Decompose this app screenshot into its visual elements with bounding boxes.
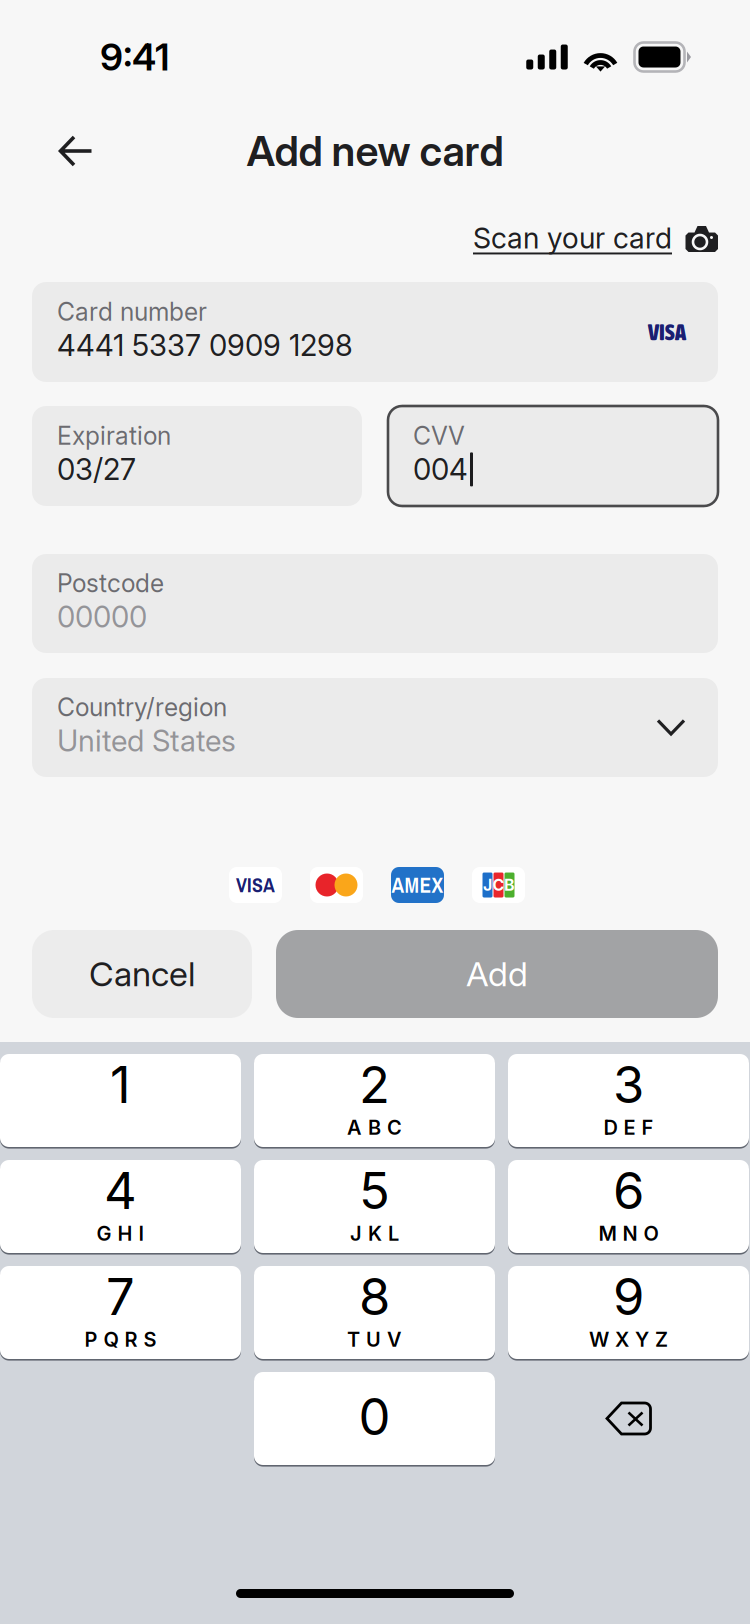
- staticText: VISA: [236, 871, 275, 898]
- staticText: A B C: [347, 1115, 402, 1140]
- staticText: C: [492, 875, 504, 895]
- staticText: 5: [359, 1160, 390, 1221]
- button[interactable]: Back: [41, 118, 111, 184]
- staticText: Add new card: [246, 126, 503, 176]
- staticText: VISA: [648, 319, 686, 345]
- staticText: W X Y Z: [589, 1327, 668, 1352]
- button[interactable]: Delete: [508, 1372, 749, 1465]
- button[interactable]: 2: [254, 1054, 495, 1147]
- staticText: G H I: [96, 1221, 144, 1246]
- staticText: Country/region: [57, 692, 227, 722]
- staticText: 6: [613, 1160, 644, 1221]
- staticText: Postcode: [57, 568, 164, 598]
- button[interactable]: 3: [508, 1054, 749, 1147]
- staticText: 1: [110, 1054, 131, 1115]
- staticText: 004: [413, 452, 468, 487]
- staticText: Card number: [57, 297, 207, 327]
- staticText: 4441 5337 0909 1298: [57, 328, 353, 363]
- staticText: Expiration: [57, 421, 171, 451]
- staticText: M N O: [598, 1221, 658, 1246]
- button[interactable]: 5: [254, 1160, 495, 1253]
- staticText: 03/27: [57, 452, 136, 487]
- staticText: United States: [57, 723, 236, 759]
- staticText: Scan your card: [473, 221, 672, 255]
- staticText: CVV: [413, 421, 465, 451]
- staticText: 00000: [57, 599, 147, 635]
- button[interactable]: 6: [508, 1160, 749, 1253]
- staticText: Cancel: [89, 953, 195, 994]
- button[interactable]: 1: [0, 1054, 241, 1147]
- staticText: Add: [466, 953, 528, 994]
- staticText: 3: [613, 1054, 644, 1115]
- staticText: 2: [359, 1054, 390, 1115]
- button[interactable]: 4: [0, 1160, 241, 1253]
- staticText: J: [483, 875, 492, 895]
- staticText: 9:41: [100, 34, 170, 80]
- button[interactable]: Add: [276, 930, 718, 1018]
- button[interactable]: 9: [508, 1266, 749, 1359]
- button[interactable]: 8: [254, 1266, 495, 1359]
- button[interactable]: Scan your card: [473, 216, 718, 260]
- staticText: D E F: [603, 1115, 653, 1140]
- staticText: 4: [104, 1160, 137, 1221]
- staticText: 9: [613, 1266, 644, 1327]
- button[interactable]: Cancel: [32, 930, 252, 1018]
- button[interactable]: 7: [0, 1266, 241, 1359]
- staticText: 7: [106, 1266, 135, 1327]
- staticText: 8: [359, 1266, 390, 1327]
- button[interactable]: 0: [254, 1372, 495, 1465]
- staticText: T U V: [347, 1327, 402, 1352]
- staticText: J K L: [350, 1221, 399, 1246]
- staticText: 0: [358, 1386, 390, 1447]
- staticText: P Q R S: [84, 1327, 156, 1352]
- staticText: AMEX: [391, 871, 443, 899]
- staticText: B: [504, 875, 515, 895]
